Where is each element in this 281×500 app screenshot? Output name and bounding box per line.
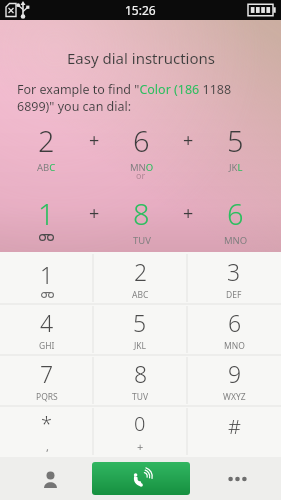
- staticText: 2: [134, 256, 148, 287]
- staticText: *: [41, 410, 53, 437]
- staticText: 6: [133, 121, 150, 160]
- staticText: MNO: [130, 161, 154, 174]
- button[interactable]: 0: [93, 406, 187, 457]
- staticText: MNO: [224, 340, 245, 352]
- staticText: 6: [228, 307, 242, 338]
- staticText: JKL: [229, 161, 243, 174]
- button[interactable]: 3: [187, 252, 281, 304]
- staticText: or: [136, 169, 146, 181]
- staticText: +: [137, 439, 144, 454]
- staticText: 0: [134, 410, 146, 437]
- button[interactable]: 9: [187, 355, 281, 406]
- staticText: WXYZ: [223, 391, 246, 403]
- staticText: 15:26: [125, 2, 156, 18]
- staticText: JKL: [134, 340, 147, 352]
- button[interactable]: 5: [93, 304, 187, 355]
- button[interactable]: *: [0, 406, 93, 457]
- button[interactable]: 4: [0, 304, 93, 355]
- button[interactable]: 7: [0, 355, 93, 406]
- staticText: 3: [227, 256, 241, 287]
- button[interactable]: 8: [93, 355, 187, 406]
- staticText: TUV: [132, 391, 149, 403]
- staticText: Easy dial instructions: [67, 48, 215, 68]
- staticText: 6: [227, 194, 244, 233]
- staticText: 8: [133, 194, 150, 233]
- staticText: DEF: [226, 289, 242, 301]
- staticText: 2: [38, 121, 55, 160]
- button[interactable]: Call: [92, 462, 190, 495]
- staticText: +: [183, 201, 194, 226]
- staticText: +: [183, 128, 194, 153]
- staticText: PQRS: [36, 391, 58, 403]
- staticText: ABC: [37, 161, 56, 174]
- staticText: TUV: [133, 234, 151, 247]
- staticText: GHI: [39, 340, 55, 352]
- staticText: MNO: [224, 234, 248, 247]
- button[interactable]: 6: [187, 304, 281, 355]
- staticText: 5: [133, 307, 147, 338]
- staticText: 5: [227, 121, 244, 160]
- staticText: For example to find "Color (186 1188 689…: [17, 81, 264, 114]
- button[interactable]: Contacts: [33, 462, 67, 496]
- button[interactable]: #: [187, 406, 281, 457]
- staticText: #: [228, 413, 241, 440]
- staticText: ,: [46, 439, 49, 454]
- button[interactable]: 1: [0, 252, 93, 304]
- staticText: 4: [40, 307, 54, 338]
- staticText: 7: [40, 358, 54, 389]
- staticText: 1: [38, 194, 55, 233]
- staticText: 8: [134, 358, 148, 389]
- staticText: +: [89, 128, 100, 153]
- staticText: +: [89, 201, 100, 226]
- staticText: ABC: [132, 289, 149, 301]
- staticText: 9: [228, 358, 242, 389]
- button[interactable]: More options: [220, 462, 254, 496]
- staticText: 1: [40, 259, 54, 290]
- button[interactable]: 2: [93, 252, 187, 304]
